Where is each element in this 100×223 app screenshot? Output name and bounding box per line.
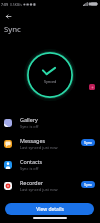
staticText: Sync — [4, 24, 21, 35]
button[interactable]: Recorder — [0, 175, 100, 196]
staticText: Messages — [20, 137, 46, 144]
staticText: Synced — [44, 79, 57, 84]
staticText: View details — [36, 206, 64, 213]
staticText: 0.5KB/s — [10, 2, 22, 7]
staticText: Gallery — [20, 116, 38, 123]
button[interactable]: Gallery — [0, 112, 100, 133]
staticText: Sync — [84, 182, 93, 187]
staticText: Sync is off — [20, 166, 39, 171]
staticText: 7:09 — [1, 2, 9, 7]
staticText: Last synced just now — [20, 187, 58, 192]
staticText: Recorder — [20, 179, 43, 186]
button[interactable]: Sync — [81, 181, 95, 188]
button[interactable]: Notification — [89, 84, 95, 90]
staticText: Sync — [84, 140, 93, 145]
button[interactable]: Contacts — [0, 154, 100, 175]
button[interactable]: Messages — [0, 133, 100, 154]
staticText: Contacts — [20, 158, 43, 165]
staticText: Last synced just now — [20, 145, 58, 150]
button[interactable]: Back — [2, 10, 15, 23]
staticText: Sync is off — [20, 124, 39, 129]
button[interactable]: Sync — [81, 139, 95, 146]
button[interactable]: View details — [5, 203, 94, 215]
